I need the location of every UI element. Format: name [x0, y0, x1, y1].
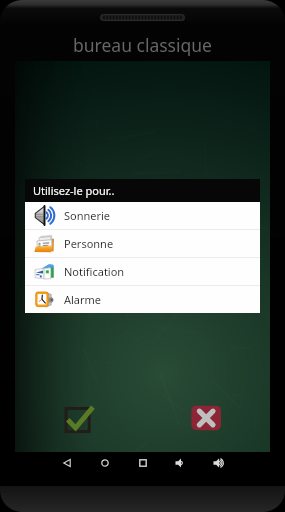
button[interactable]: Augmenter le volume: [207, 452, 230, 474]
staticText: Notification: [64, 264, 125, 279]
button[interactable]: Notification: [25, 258, 260, 285]
button[interactable]: Retour: [55, 452, 78, 474]
staticText: Personne: [64, 236, 114, 251]
button[interactable]: Accueil: [93, 452, 116, 474]
staticText: bureau classique: [73, 33, 212, 57]
staticText: Sonnerie: [64, 208, 111, 223]
button[interactable]: Sonnerie: [25, 202, 260, 229]
staticText: Alarme: [64, 292, 102, 307]
button[interactable]: Valider: [63, 402, 97, 436]
button[interactable]: Personne: [25, 230, 260, 257]
button[interactable]: Baisser le volume: [169, 452, 192, 474]
button[interactable]: Annuler: [189, 401, 223, 435]
staticText: Utilisez-le pour..: [33, 183, 115, 198]
button[interactable]: Alarme: [25, 286, 260, 313]
button[interactable]: Applications recentes: [131, 452, 154, 474]
